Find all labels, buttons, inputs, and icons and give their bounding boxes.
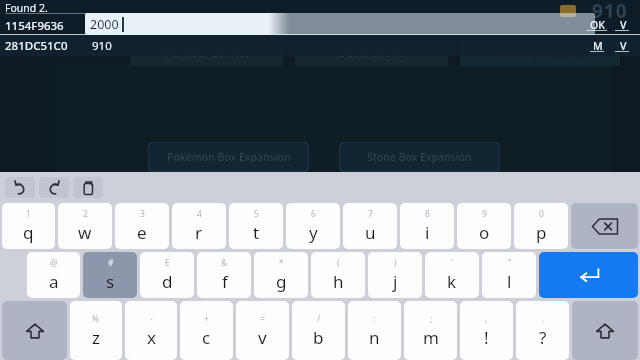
staticText: :: [373, 313, 376, 325]
button[interactable]: &: [197, 252, 251, 298]
staticText: .: [542, 313, 545, 325]
staticText: V: [620, 39, 627, 53]
button[interactable]: =: [236, 301, 289, 360]
button[interactable]: Stone Box Expansion: [339, 142, 500, 172]
button[interactable]: *: [254, 252, 308, 298]
button[interactable]: E: [140, 252, 194, 298]
button[interactable]: ,: [460, 301, 513, 360]
staticText: 5: [254, 208, 259, 220]
button[interactable]: 2000: [85, 13, 595, 35]
staticText: p: [536, 221, 547, 244]
staticText: z: [92, 326, 100, 349]
staticText: ,: [485, 313, 488, 325]
staticText: (: [337, 257, 340, 269]
button[interactable]: Pokémon Box Expansion: [148, 142, 309, 172]
staticText: 4: [197, 208, 202, 220]
button[interactable]: Redo: [39, 177, 69, 198]
button[interactable]: #: [83, 252, 137, 298]
staticText: #: [108, 257, 114, 269]
button[interactable]: 8: [400, 203, 454, 249]
staticText: t: [253, 221, 260, 244]
button[interactable]: +: [180, 301, 233, 360]
staticText: 2: [83, 208, 88, 220]
button[interactable]: Enter: [539, 252, 638, 298]
staticText: h: [333, 270, 344, 293]
staticText: ;: [430, 313, 433, 325]
staticText: &: [221, 257, 228, 269]
staticText: +: [204, 313, 209, 325]
staticText: 3: [140, 208, 145, 220]
button[interactable]: ": [482, 252, 536, 298]
button[interactable]: 2: [58, 203, 112, 249]
staticText: v: [258, 326, 267, 349]
staticText: l: [507, 270, 512, 293]
staticText: c: [202, 326, 211, 349]
staticText: ": [508, 257, 512, 269]
button[interactable]: Modify row 2: [589, 38, 607, 54]
button[interactable]: Expand row 1: [614, 17, 632, 33]
button[interactable]: %: [70, 301, 122, 360]
button[interactable]: -: [125, 301, 177, 360]
staticText: 7: [368, 208, 373, 220]
staticText: k: [447, 270, 457, 293]
staticText: s: [106, 270, 115, 293]
staticText: g: [276, 270, 287, 293]
button[interactable]: Backspace: [571, 203, 638, 249]
button[interactable]: :: [348, 301, 401, 360]
staticText: OK: [590, 18, 605, 32]
button[interactable]: 9: [457, 203, 511, 249]
button[interactable]: 3: [115, 203, 169, 249]
staticText: *: [279, 257, 284, 269]
button[interactable]: 1: [2, 203, 55, 249]
button[interactable]: Shift: [572, 301, 638, 360]
button[interactable]: 5: [229, 203, 283, 249]
button[interactable]: 4: [172, 203, 226, 249]
staticText: r: [195, 221, 203, 244]
staticText: Stone Box Expansion: [367, 150, 472, 164]
staticText: 6: [311, 208, 316, 220]
button[interactable]: ': [425, 252, 479, 298]
button[interactable]: OK: [586, 17, 608, 33]
staticText: Decorations: [338, 45, 405, 61]
staticText: 9: [482, 208, 487, 220]
button[interactable]: /: [292, 301, 345, 360]
button[interactable]: [0, 35, 640, 56]
staticText: 2000: [90, 16, 119, 33]
staticText: b: [313, 326, 324, 349]
button[interactable]: Box Expansions: [460, 40, 620, 66]
staticText: y: [309, 221, 318, 244]
button[interactable]: 6: [286, 203, 340, 249]
staticText: f: [222, 270, 228, 293]
staticText: o: [479, 221, 490, 244]
staticText: ?: [539, 326, 547, 349]
button[interactable]: (: [311, 252, 365, 298]
staticText: V: [620, 18, 627, 32]
staticText: 281DC51C0: [5, 38, 68, 54]
button[interactable]: ;: [404, 301, 457, 360]
staticText: /: [317, 313, 321, 325]
button[interactable]: Shift: [2, 301, 67, 360]
staticText: Found 2.: [5, 1, 48, 15]
staticText: Member Service: [162, 45, 251, 61]
staticText: d: [162, 270, 173, 293]
button[interactable]: Undo: [5, 177, 35, 198]
staticText: !: [484, 326, 489, 349]
staticText: 8: [425, 208, 430, 220]
button[interactable]: 0: [514, 203, 568, 249]
staticText: -: [150, 313, 153, 325]
button[interactable]: Expand row 2: [614, 38, 632, 54]
button[interactable]: @: [27, 252, 80, 298]
staticText: @: [50, 257, 58, 269]
staticText: =: [260, 313, 265, 325]
button[interactable]: Clipboard: [73, 177, 103, 198]
staticText: m: [423, 326, 439, 349]
button[interactable]: .: [516, 301, 569, 360]
button[interactable]: 7: [343, 203, 397, 249]
button[interactable]: ): [368, 252, 422, 298]
staticText: oke Mart: [100, 10, 182, 36]
staticText: 0: [539, 208, 544, 220]
staticText: Pokémon Box Expansion: [167, 150, 291, 164]
